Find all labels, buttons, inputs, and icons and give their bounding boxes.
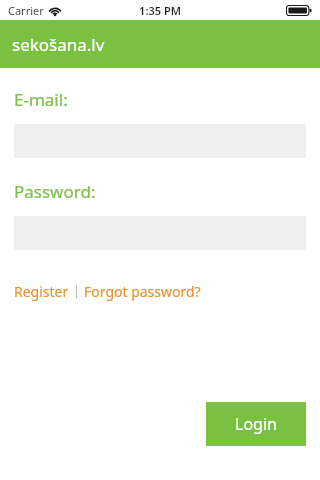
- staticText: Register: [14, 282, 69, 301]
- button[interactable]: Login: [206, 402, 306, 446]
- staticText: Login: [235, 413, 277, 435]
- staticText: Carrier: [8, 3, 44, 18]
- staticText: Password:: [14, 180, 96, 203]
- staticText: E-mail:: [14, 88, 68, 111]
- other: Battery full: [286, 5, 312, 16]
- button[interactable]: Forgot password?: [84, 282, 201, 301]
- button[interactable]: Register: [14, 282, 69, 301]
- staticText: 1:35 PM: [139, 3, 181, 18]
- other: Wi-Fi signal: [49, 6, 61, 16]
- staticText: Forgot password?: [84, 282, 201, 301]
- staticText: sekošana.lv: [12, 33, 105, 56]
